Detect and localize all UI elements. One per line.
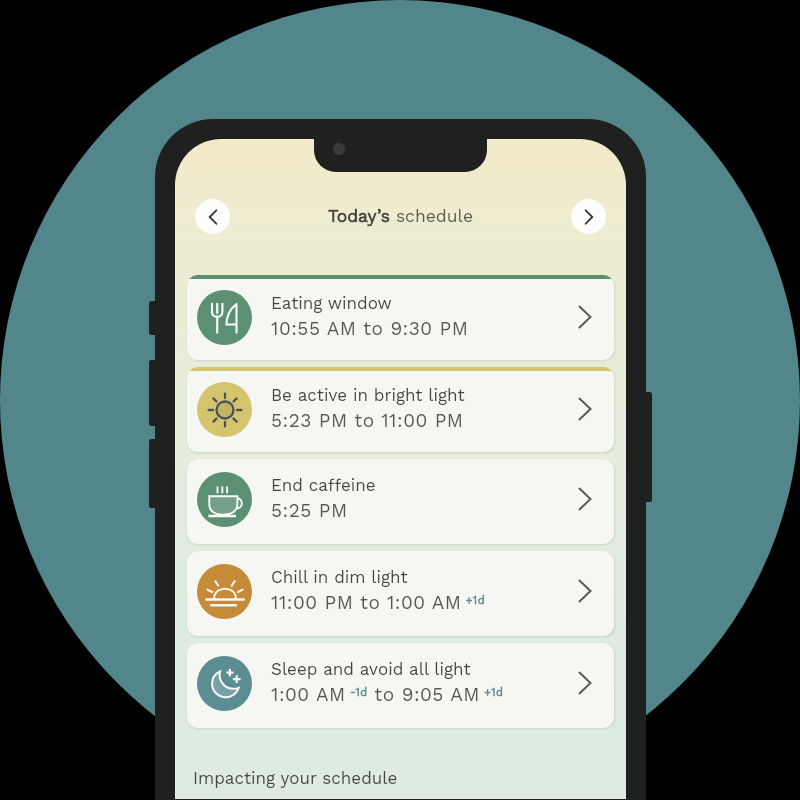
staticText: Today’s schedule — [328, 206, 474, 227]
button[interactable]: Eating window — [187, 275, 614, 360]
staticText: Impacting your schedule — [193, 768, 398, 788]
staticText: 11:00 PM to 1:00 AM +1d — [271, 591, 486, 613]
staticText: Sleep and avoid all light — [271, 659, 471, 679]
staticText: 10:55 AM to 9:30 PM — [271, 317, 469, 339]
staticText: 1:00 AM -1d to 9:05 AM +1d — [271, 683, 504, 705]
staticText: 5:23 PM to 11:00 PM — [271, 409, 464, 431]
staticText: Eating window — [271, 293, 392, 313]
button[interactable]: Previous day — [195, 199, 230, 234]
staticText: 5:25 PM — [271, 499, 348, 521]
button[interactable]: Next day — [571, 199, 606, 234]
staticText: End caffeine — [271, 475, 376, 495]
staticText: Chill in dim light — [271, 567, 408, 587]
button[interactable]: Sleep and avoid all light — [187, 643, 614, 728]
staticText: Be active in bright light — [271, 385, 465, 405]
button[interactable]: Be active in bright light — [187, 367, 614, 452]
button[interactable]: End caffeine — [187, 459, 614, 544]
button[interactable]: Chill in dim light — [187, 551, 614, 636]
